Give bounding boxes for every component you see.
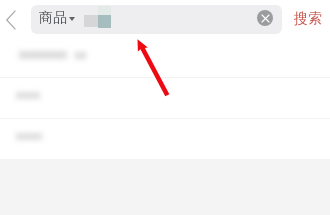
- staticText: 搜索: [294, 10, 322, 28]
- button[interactable]: [0, 78, 330, 118]
- button[interactable]: 搜索: [286, 0, 330, 38]
- staticText: 商品: [39, 9, 67, 27]
- button[interactable]: Clear search text: [257, 10, 273, 26]
- button[interactable]: [0, 38, 330, 77]
- button[interactable]: Back: [0, 0, 23, 38]
- button[interactable]: 商品: [31, 5, 282, 34]
